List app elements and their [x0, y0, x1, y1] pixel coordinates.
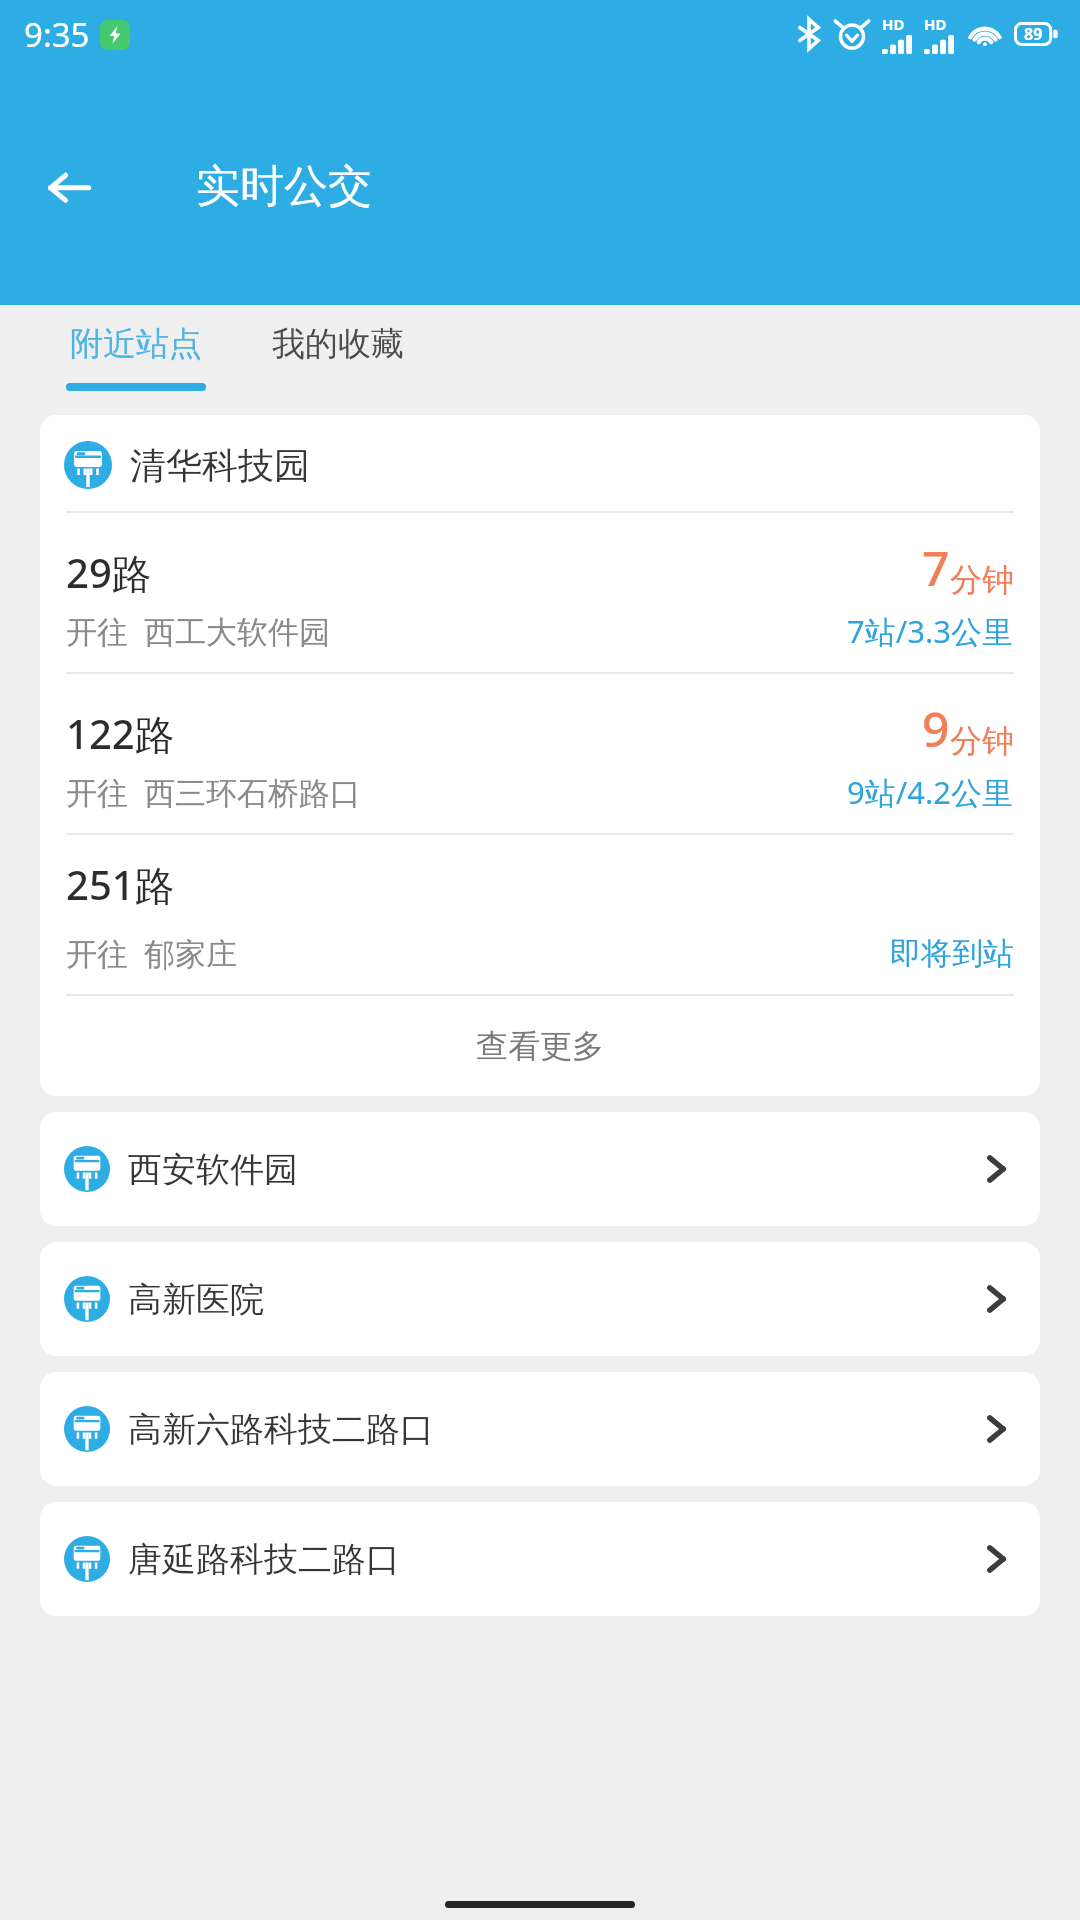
staticText: 29路 — [66, 545, 152, 600]
staticText: 开往 西三环石桥路口 — [66, 771, 362, 813]
staticText: 西安软件园 — [128, 1148, 298, 1191]
staticText: 即将到站 — [890, 934, 1014, 973]
staticText: 高新医院 — [128, 1278, 264, 1321]
staticText: 9:35 — [24, 12, 90, 57]
staticText: 唐延路科技二路口 — [128, 1538, 400, 1581]
staticText: 122路 — [66, 706, 175, 761]
staticText: 9站/4.2公里 — [847, 771, 1014, 813]
staticText: 查看更多 — [476, 1026, 604, 1066]
staticText: 我的收藏 — [272, 323, 404, 365]
staticText: 清华科技园 — [130, 443, 310, 488]
button[interactable]: 附近站点 — [66, 305, 206, 391]
staticText: 7站/3.3公里 — [847, 610, 1014, 652]
button[interactable]: 唐延路科技二路口 — [40, 1502, 1040, 1616]
staticText: 7 — [922, 535, 950, 600]
staticText: 开往 郁家庄 — [66, 932, 238, 974]
staticText: 附近站点 — [70, 323, 202, 365]
button[interactable]: 西安软件园 — [40, 1112, 1040, 1226]
button[interactable]: Back — [34, 152, 104, 222]
staticText: 251路 — [66, 857, 175, 912]
staticText: 实时公交 — [196, 159, 372, 214]
button[interactable]: 清华科技园 — [40, 415, 1040, 1096]
staticText: HD — [924, 14, 947, 34]
button[interactable]: 高新六路科技二路口 — [40, 1372, 1040, 1486]
staticText: HD — [882, 14, 905, 34]
staticText: 89 — [1024, 23, 1043, 45]
staticText: 分钟 — [950, 560, 1014, 600]
staticText: 分钟 — [950, 721, 1014, 761]
staticText: 9 — [922, 696, 950, 761]
button[interactable]: 高新医院 — [40, 1242, 1040, 1356]
button[interactable]: 查看更多 — [40, 996, 1040, 1096]
staticText: 高新六路科技二路口 — [128, 1408, 434, 1451]
button[interactable]: 我的收藏 — [272, 305, 404, 365]
staticText: 开往 西工大软件园 — [66, 610, 331, 652]
